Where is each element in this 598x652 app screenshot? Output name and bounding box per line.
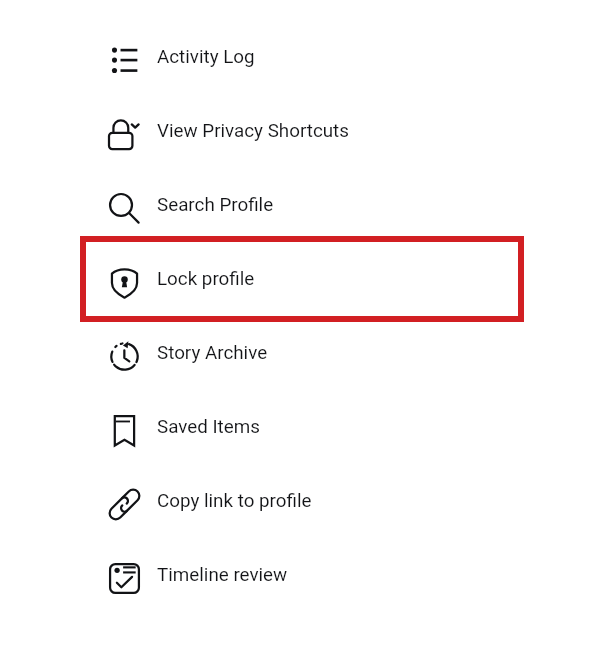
- button[interactable]: Search Profile: [0, 171, 598, 245]
- button[interactable]: Story Archive: [0, 319, 598, 393]
- staticText: Story Archive: [157, 342, 268, 364]
- button[interactable]: Saved Items: [0, 393, 598, 467]
- other: Copy link to profile: [109, 489, 140, 520]
- staticText: Lock profile: [157, 268, 255, 290]
- button[interactable]: Copy link to profile: [0, 467, 598, 541]
- staticText: Search Profile: [157, 194, 274, 216]
- other: View Privacy Shortcuts: [109, 119, 140, 150]
- button[interactable]: Timeline review: [0, 541, 598, 615]
- other: Timeline review: [109, 563, 140, 594]
- staticText: Timeline review: [157, 564, 288, 586]
- other: Lock profile: [109, 267, 140, 298]
- other: Activity Log: [109, 45, 140, 76]
- staticText: Activity Log: [157, 46, 255, 68]
- staticText: Copy link to profile: [157, 490, 312, 512]
- staticText: View Privacy Shortcuts: [157, 120, 349, 142]
- staticText: Saved Items: [157, 416, 260, 438]
- other: Saved Items: [109, 415, 140, 446]
- other: Search Profile: [109, 193, 140, 224]
- other: Story Archive: [109, 341, 140, 372]
- button[interactable]: View Privacy Shortcuts: [0, 97, 598, 171]
- button[interactable]: Activity Log: [0, 23, 598, 97]
- button[interactable]: Lock profile: [0, 245, 598, 319]
